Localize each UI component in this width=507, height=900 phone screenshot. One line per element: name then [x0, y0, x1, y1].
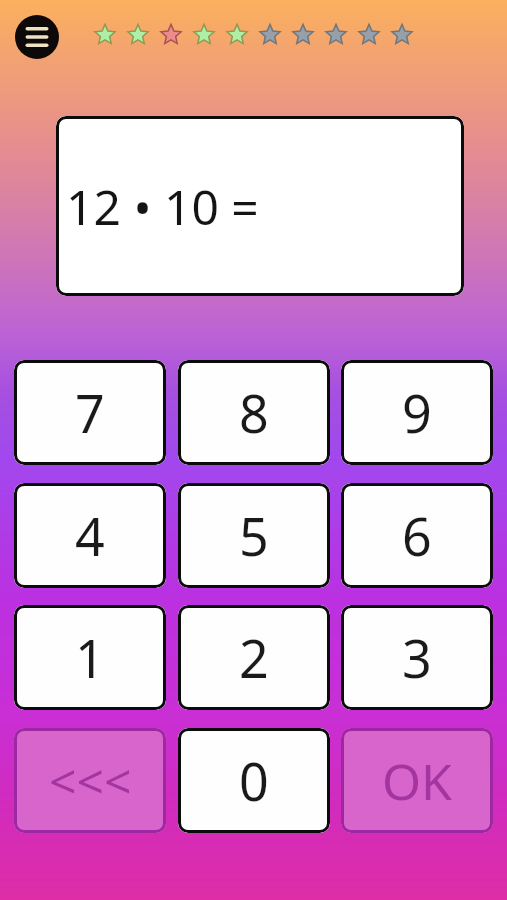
staticText: 6: [402, 500, 432, 571]
button[interactable]: 6: [341, 483, 493, 588]
button[interactable]: 0: [178, 728, 330, 833]
button[interactable]: 4: [14, 483, 166, 588]
button[interactable]: 2: [178, 605, 330, 710]
staticText: 4: [75, 500, 105, 571]
staticText: <<<: [49, 748, 132, 813]
staticText: 7: [75, 377, 105, 448]
button[interactable]: 7: [14, 360, 166, 465]
staticText: 1: [75, 622, 105, 693]
button[interactable]: OK: [341, 728, 493, 833]
staticText: 0: [239, 745, 269, 816]
staticText: 8: [239, 377, 269, 448]
button[interactable]: 5: [178, 483, 330, 588]
staticText: 2: [239, 622, 269, 693]
button[interactable]: <<<: [14, 728, 166, 833]
button[interactable]: 9: [341, 360, 493, 465]
button[interactable]: 3: [341, 605, 493, 710]
staticText: 3: [402, 622, 432, 693]
staticText: OK: [382, 747, 452, 815]
button[interactable]: [15, 15, 59, 59]
staticText: 12 • 10 =: [66, 174, 259, 239]
button[interactable]: 1: [14, 605, 166, 710]
staticText: 9: [402, 377, 432, 448]
staticText: 5: [239, 500, 269, 571]
button[interactable]: 8: [178, 360, 330, 465]
